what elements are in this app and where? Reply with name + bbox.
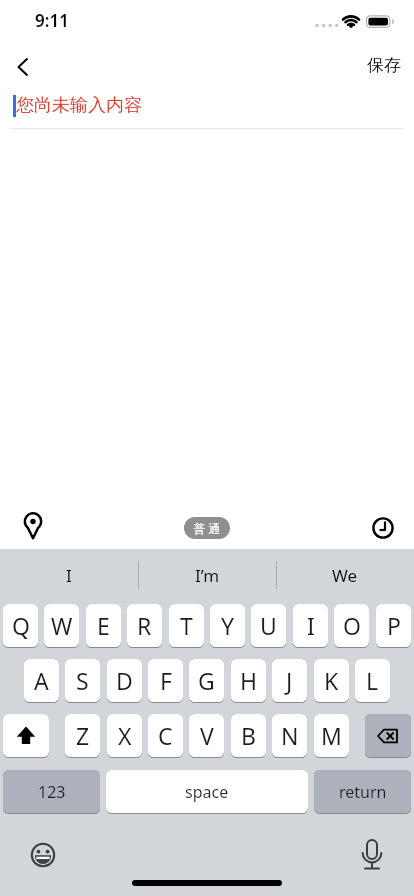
button[interactable]: 123 <box>3 770 100 814</box>
staticText: R <box>137 610 152 641</box>
staticText: D <box>116 665 133 696</box>
button[interactable]: Q <box>3 604 38 648</box>
button[interactable]: M <box>314 714 349 758</box>
staticText: Y <box>221 610 235 641</box>
button[interactable]: B <box>231 714 266 758</box>
button[interactable]: We <box>276 549 414 601</box>
staticText: I’m <box>195 564 220 587</box>
button[interactable] <box>365 714 411 758</box>
staticText: I <box>66 564 72 587</box>
staticText: 123 <box>38 781 66 803</box>
button[interactable] <box>16 507 50 545</box>
button[interactable]: L <box>355 659 390 703</box>
button[interactable]: T <box>169 604 204 648</box>
staticText: N <box>281 720 299 751</box>
button[interactable]: 普通 <box>184 517 230 539</box>
button[interactable]: R <box>127 604 162 648</box>
staticText: H <box>240 665 258 696</box>
button[interactable]: A <box>24 659 59 703</box>
button[interactable]: K <box>314 659 349 703</box>
staticText: T <box>180 610 193 641</box>
staticText: 9:11 <box>35 9 69 32</box>
button[interactable]: O <box>334 604 369 648</box>
button[interactable]: F <box>148 659 183 703</box>
button[interactable]: N <box>272 714 307 758</box>
button[interactable]: return <box>314 770 411 814</box>
staticText: Q <box>12 610 30 641</box>
button[interactable]: P <box>376 604 411 648</box>
staticText: J <box>286 665 293 696</box>
button[interactable]: J <box>272 659 307 703</box>
button[interactable]: I <box>293 604 328 648</box>
staticText: S <box>76 665 89 696</box>
staticText: K <box>324 665 339 696</box>
button[interactable]: W <box>44 604 79 648</box>
staticText: W <box>51 610 73 641</box>
staticText: L <box>366 665 379 696</box>
staticText: M <box>321 720 342 751</box>
button[interactable]: V <box>189 714 224 758</box>
staticText: A <box>34 665 49 696</box>
button[interactable] <box>26 838 60 872</box>
button[interactable]: U <box>251 604 286 648</box>
button[interactable] <box>6 50 40 84</box>
staticText: We <box>332 564 358 587</box>
button[interactable] <box>3 714 49 758</box>
staticText: F <box>160 665 172 696</box>
staticText: I <box>307 610 315 641</box>
staticText: Z <box>76 720 90 751</box>
button[interactable]: Y <box>210 604 245 648</box>
button[interactable] <box>366 511 400 545</box>
staticText: U <box>260 610 277 641</box>
button[interactable]: I’m <box>138 549 276 601</box>
staticText: O <box>343 610 361 641</box>
button[interactable]: C <box>148 714 183 758</box>
button[interactable]: H <box>231 659 266 703</box>
button[interactable]: I <box>0 549 138 601</box>
staticText: E <box>97 610 110 641</box>
button[interactable]: S <box>65 659 100 703</box>
button[interactable]: 保存 <box>341 52 401 78</box>
staticText: space <box>185 781 229 803</box>
staticText: G <box>198 665 215 696</box>
staticText: 普通 <box>192 521 222 536</box>
staticText: C <box>158 720 173 751</box>
staticText: P <box>387 610 401 641</box>
button[interactable]: D <box>107 659 142 703</box>
button[interactable]: space <box>106 770 308 814</box>
button[interactable]: E <box>86 604 121 648</box>
button[interactable]: G <box>189 659 224 703</box>
staticText: return <box>339 781 387 803</box>
staticText: 保存 <box>367 55 401 76</box>
button[interactable]: X <box>107 714 142 758</box>
staticText: X <box>118 720 132 751</box>
staticText: V <box>200 720 214 751</box>
staticText: B <box>241 720 256 751</box>
staticText: 您尚未输入内容 <box>16 94 142 117</box>
button[interactable] <box>356 836 388 874</box>
button[interactable]: Z <box>65 714 100 758</box>
